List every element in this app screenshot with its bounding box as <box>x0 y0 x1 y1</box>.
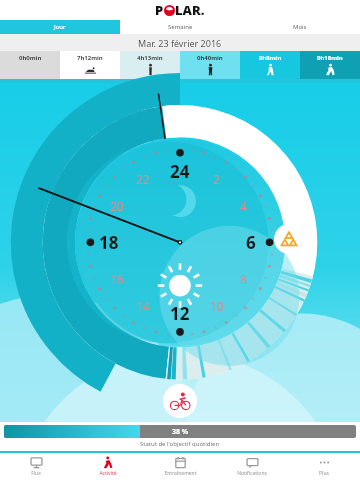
button[interactable]: Inactivité <box>274 224 304 254</box>
staticText: 24 <box>170 160 190 183</box>
staticText: Plus <box>319 470 329 477</box>
button[interactable]: 0h40min <box>180 51 240 79</box>
staticText: 18 <box>99 231 119 254</box>
staticText: Flux <box>31 470 41 477</box>
staticText: 38 % <box>172 427 189 437</box>
staticText: Mois <box>293 23 307 31</box>
button[interactable]: 7h12min <box>60 51 120 79</box>
button[interactable]: Flux <box>0 453 72 480</box>
staticText: LAR. <box>175 1 205 19</box>
button[interactable]: Semaine <box>120 20 240 34</box>
staticText: Notifications <box>237 470 267 477</box>
staticText: 0h0min <box>19 54 42 62</box>
staticText: Semaine <box>168 23 193 31</box>
staticText: 20 <box>110 198 124 214</box>
staticText: Entraînement <box>164 470 197 477</box>
staticText: 12 <box>170 302 190 325</box>
button[interactable]: 0h0min <box>0 51 60 79</box>
staticText: 2 <box>213 171 220 187</box>
staticText: 16 <box>110 271 124 287</box>
button[interactable]: Entraînement <box>144 453 216 480</box>
staticText: 8 <box>240 271 247 287</box>
staticText: Activité <box>99 470 117 477</box>
staticText: 22 <box>136 171 150 187</box>
staticText: 14 <box>136 298 150 314</box>
staticText: 10 <box>210 298 224 314</box>
staticText: P <box>155 1 164 19</box>
button[interactable]: Mois <box>240 20 360 34</box>
staticText: 4 <box>240 198 247 214</box>
button[interactable]: Jour <box>0 20 120 34</box>
staticText: 4h13min <box>137 54 163 62</box>
staticText: Mar. 23 février 2016 <box>138 37 222 49</box>
button[interactable]: 0h18min <box>300 51 360 79</box>
staticText: Jour <box>54 23 66 31</box>
staticText: 7h12min <box>77 54 103 62</box>
button[interactable]: Séance de vélo <box>163 384 197 418</box>
button[interactable]: 38 % <box>4 425 356 438</box>
button[interactable]: 4h13min <box>120 51 180 79</box>
staticText: Statut de l'objectif quotidien <box>140 440 220 448</box>
button[interactable]: Plus <box>288 453 360 480</box>
staticText: 0h8min <box>259 54 282 62</box>
button[interactable]: 0h8min <box>240 51 300 79</box>
staticText: 0h40min <box>197 54 223 62</box>
button[interactable]: Notifications <box>216 453 288 480</box>
staticText: 0h18min <box>317 54 343 62</box>
staticText: 6 <box>246 231 256 254</box>
button[interactable]: Activité <box>72 453 144 480</box>
